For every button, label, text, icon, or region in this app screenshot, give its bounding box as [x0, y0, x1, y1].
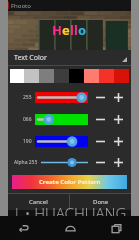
staticText: e: [62, 21, 70, 39]
staticText: 190: [23, 138, 32, 145]
staticText: o: [78, 21, 87, 39]
staticText: | • HUACHUANG: [0, 203, 139, 223]
staticText: Fhooto: [11, 2, 31, 10]
staticText: Done: [93, 198, 109, 206]
button[interactable]: Recent apps: [93, 216, 139, 240]
staticText: Create Color Pattern: [39, 178, 101, 186]
staticText: 255: [23, 94, 32, 101]
staticText: Cancel: [29, 198, 48, 206]
button[interactable]: Increase 190: [111, 134, 125, 148]
staticText: Alpha 255: [14, 159, 38, 166]
button[interactable]: Increase alpha: [111, 155, 125, 169]
button[interactable]: Increase 255: [111, 90, 125, 104]
button[interactable]: Increase 066: [111, 112, 125, 126]
staticText: l: [70, 21, 74, 39]
staticText: 066: [23, 116, 32, 123]
button[interactable]: Cancel: [8, 194, 69, 210]
staticText: H: [52, 21, 62, 39]
button[interactable]: [41, 157, 88, 168]
button[interactable]: Text Color: [8, 50, 131, 65]
button[interactable]: Done: [70, 194, 131, 210]
button[interactable]: [35, 136, 88, 147]
button[interactable]: Decrease 066: [93, 112, 107, 126]
button[interactable]: Decrease 190: [93, 134, 107, 148]
staticText: Text Color: [14, 53, 47, 63]
button[interactable]: Decrease alpha: [93, 155, 107, 169]
button[interactable]: Decrease 255: [93, 90, 107, 104]
button[interactable]: Create Color Pattern: [12, 175, 127, 189]
button[interactable]: [35, 114, 88, 125]
button[interactable]: Back: [0, 216, 47, 240]
staticText: l: [74, 21, 78, 39]
button[interactable]: [35, 92, 88, 103]
button[interactable]: Home: [47, 216, 93, 240]
